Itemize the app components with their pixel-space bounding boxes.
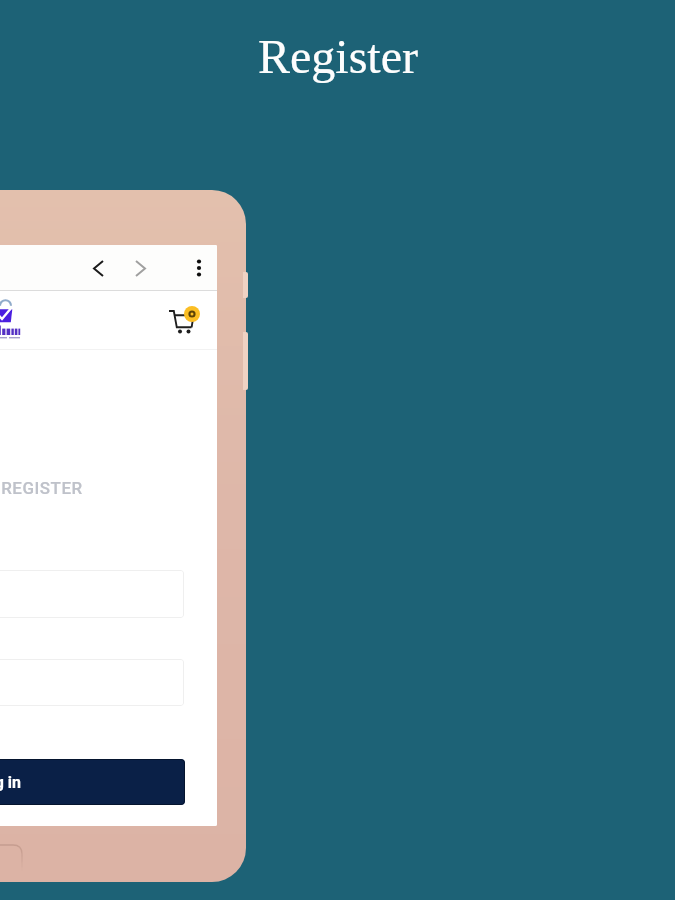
button[interactable]: More options (182, 251, 216, 285)
staticText: LOGIN OR REGISTER (0, 478, 83, 498)
button[interactable]: Shopping cart, 0 items (167, 304, 203, 338)
button[interactable]: Input field (0, 659, 184, 706)
button[interactable]: Back (81, 251, 115, 285)
button[interactable]: Home (0, 299, 22, 343)
button[interactable]: Forward (123, 251, 157, 285)
button[interactable]: Input field (0, 570, 184, 618)
staticText: Register (258, 30, 418, 83)
staticText: Log in (0, 773, 22, 792)
button[interactable]: Log in (0, 759, 185, 805)
